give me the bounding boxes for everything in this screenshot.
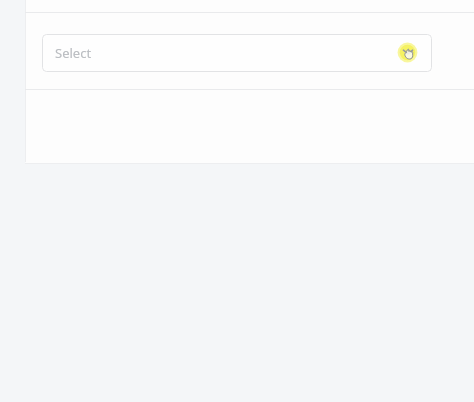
staticText: Select [55,44,92,62]
button[interactable]: Open dropdown [393,38,423,68]
button[interactable]: Select [42,34,432,72]
